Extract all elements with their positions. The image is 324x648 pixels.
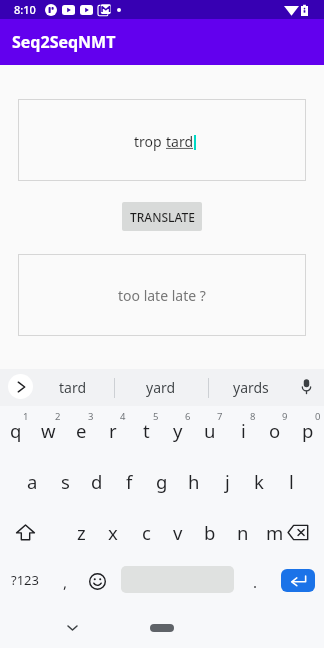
staticText: c [142, 520, 151, 545]
staticText: trop [134, 132, 166, 151]
staticText: s [61, 469, 70, 494]
staticText: ?123 [11, 571, 39, 589]
staticText: o [269, 418, 281, 443]
staticText: 7 [217, 410, 223, 423]
staticText: j [225, 469, 230, 494]
staticText: , [63, 572, 68, 592]
button[interactable]: too late late ? [18, 254, 306, 336]
button[interactable]: yards [221, 369, 281, 406]
button[interactable]: d [81, 456, 113, 507]
button[interactable]: x [97, 507, 129, 558]
staticText: g [156, 469, 168, 494]
button[interactable]: v [162, 507, 194, 558]
staticText: TRANSLATE [130, 209, 195, 225]
button[interactable]: Backspace [283, 507, 313, 558]
staticText: b [204, 520, 216, 545]
button[interactable]: trop [18, 99, 306, 181]
staticText: 4 [120, 410, 126, 423]
staticText: 1 [23, 410, 29, 423]
staticText: f [126, 469, 133, 494]
button[interactable]: y [162, 405, 194, 456]
staticText: yards [233, 378, 269, 397]
button[interactable]: yard [131, 369, 191, 406]
staticText: h [188, 469, 200, 494]
button[interactable]: c [130, 507, 162, 558]
staticText: e [76, 418, 87, 443]
button[interactable]: i [227, 405, 259, 456]
staticText: t [143, 418, 150, 443]
staticText: 5 [153, 410, 159, 423]
staticText: w [41, 418, 56, 443]
button[interactable]: Enter [281, 569, 315, 592]
button[interactable]: e [65, 405, 97, 456]
button[interactable]: ?123 [2, 556, 48, 604]
button[interactable]: z [65, 507, 97, 558]
staticText: m [266, 520, 284, 545]
staticText: x [108, 520, 118, 545]
staticText: 9 [282, 410, 288, 423]
button[interactable]: Hide keyboard [60, 616, 84, 640]
button[interactable]: o [259, 405, 291, 456]
staticText: q [10, 418, 22, 443]
button[interactable]: , [52, 558, 78, 606]
staticText: Seq2SeqNMT [12, 31, 116, 53]
button[interactable]: Shift [8, 507, 43, 558]
button[interactable]: l [275, 456, 307, 507]
staticText: 8:10 [14, 2, 36, 17]
staticText: 0 [315, 410, 321, 423]
button[interactable]: q [0, 405, 32, 456]
staticText: i [241, 418, 246, 443]
staticText: a [27, 469, 38, 494]
staticText: too late late ? [118, 286, 206, 305]
staticText: . [253, 572, 258, 592]
button[interactable]: . [242, 558, 268, 606]
staticText: tard [166, 132, 194, 151]
staticText: 6 [185, 410, 191, 423]
button[interactable]: t [130, 405, 162, 456]
button[interactable]: k [243, 456, 275, 507]
button[interactable]: f [113, 456, 145, 507]
staticText: y [173, 418, 183, 443]
button[interactable]: w [32, 405, 64, 456]
button[interactable]: Home [150, 624, 174, 632]
button[interactable]: b [194, 507, 226, 558]
staticText: n [237, 520, 249, 545]
staticText: u [204, 418, 216, 443]
staticText: 2 [55, 410, 61, 423]
staticText: 3 [88, 410, 94, 423]
button[interactable]: Emoji [82, 557, 112, 605]
button[interactable]: m [259, 507, 291, 558]
staticText: l [289, 469, 294, 494]
staticText: tard [59, 378, 87, 397]
button[interactable]: u [194, 405, 226, 456]
button[interactable]: j [211, 456, 243, 507]
staticText: r [109, 418, 117, 443]
button[interactable]: s [49, 456, 81, 507]
staticText: 8 [250, 410, 256, 423]
staticText: v [173, 520, 183, 545]
staticText: yard [146, 378, 176, 397]
button[interactable]: h [178, 456, 210, 507]
button[interactable]: n [227, 507, 259, 558]
staticText: p [302, 418, 314, 443]
button[interactable]: tard [43, 369, 103, 406]
button[interactable]: Voice input [297, 377, 316, 396]
button[interactable]: r [97, 405, 129, 456]
button[interactable]: a [16, 456, 48, 507]
staticText: z [77, 520, 86, 545]
staticText: d [91, 469, 103, 494]
button[interactable]: More suggestions [8, 374, 33, 399]
button[interactable]: TRANSLATE [122, 202, 202, 231]
staticText: k [254, 469, 264, 494]
button[interactable]: p [292, 405, 324, 456]
button[interactable]: g [146, 456, 178, 507]
